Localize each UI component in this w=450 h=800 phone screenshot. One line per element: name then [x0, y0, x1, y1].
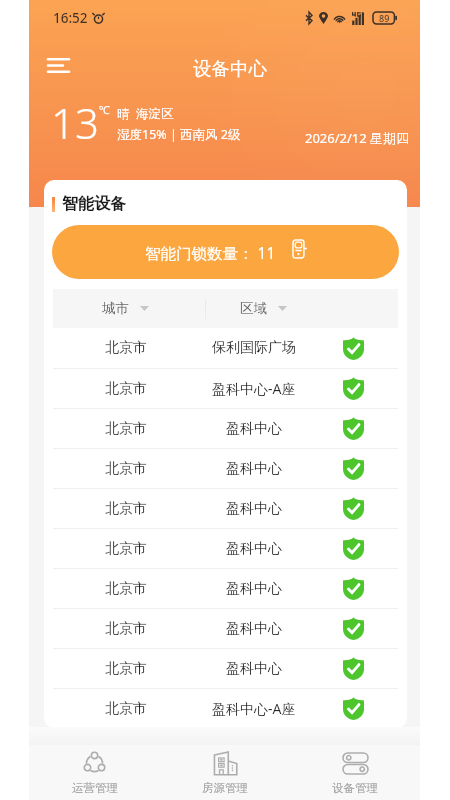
staticText: 盈科中心 — [226, 660, 282, 678]
staticText: 北京市 — [105, 460, 147, 478]
button[interactable]: 智能门锁数量： 11 — [52, 225, 399, 279]
staticText: 智能设备 — [62, 194, 126, 214]
staticText: 湿度15% | 西南风 2级 — [117, 126, 241, 143]
staticText: ℃ — [99, 102, 110, 117]
button[interactable]: 北京市 — [44, 328, 407, 368]
button[interactable]: 区域 — [198, 289, 309, 328]
staticText: 盈科中心-A座 — [212, 699, 296, 718]
button[interactable]: 北京市 — [44, 648, 407, 688]
staticText: 北京市 — [105, 660, 147, 678]
button[interactable]: 北京市 — [44, 688, 407, 728]
button[interactable]: 北京市 — [44, 408, 407, 448]
button[interactable]: 城市 — [53, 289, 198, 328]
button[interactable]: 北京市 — [44, 368, 407, 408]
staticText: 北京市 — [105, 339, 147, 357]
staticText: 盈科中心 — [226, 500, 282, 518]
staticText: 盈科中心 — [226, 620, 282, 638]
button[interactable]: 北京市 — [44, 448, 407, 488]
staticText: 盈科中心 — [226, 420, 282, 438]
staticText: 房源管理 — [202, 781, 248, 795]
staticText: 北京市 — [105, 620, 147, 638]
staticText: 16:52 — [53, 9, 88, 27]
staticText: 保利国际广场 — [212, 339, 296, 357]
button[interactable]: Menu — [43, 53, 74, 78]
button[interactable]: 北京市 — [44, 528, 407, 568]
staticText: 89 — [379, 12, 390, 24]
staticText: 晴 海淀区 — [117, 105, 174, 122]
staticText: 智能门锁数量： 11 — [145, 242, 276, 263]
staticText: 盈科中心-A座 — [212, 379, 296, 398]
staticText: 设备中心 — [193, 57, 267, 80]
staticText: 盈科中心 — [226, 460, 282, 478]
staticText: 运营管理 — [72, 781, 118, 795]
staticText: 北京市 — [105, 420, 147, 438]
staticText: 北京市 — [105, 700, 147, 718]
button[interactable]: 设备管理 — [290, 745, 420, 795]
staticText: 盈科中心 — [226, 540, 282, 558]
button[interactable]: 北京市 — [44, 608, 407, 648]
staticText: 北京市 — [105, 500, 147, 518]
staticText: 北京市 — [105, 540, 147, 558]
staticText: 城市 — [102, 300, 129, 317]
staticText: 北京市 — [105, 580, 147, 598]
staticText: 盈科中心 — [226, 580, 282, 598]
button[interactable]: 运营管理 — [29, 745, 160, 795]
button[interactable]: 北京市 — [44, 568, 407, 608]
staticText: 2026/2/12 星期四 — [305, 129, 410, 147]
staticText: 设备管理 — [332, 781, 378, 795]
staticText: 北京市 — [105, 380, 147, 398]
staticText: 13 — [51, 94, 99, 151]
staticText: 区域 — [240, 300, 267, 317]
button[interactable]: 北京市 — [44, 488, 407, 528]
button[interactable]: 房源管理 — [160, 745, 290, 795]
